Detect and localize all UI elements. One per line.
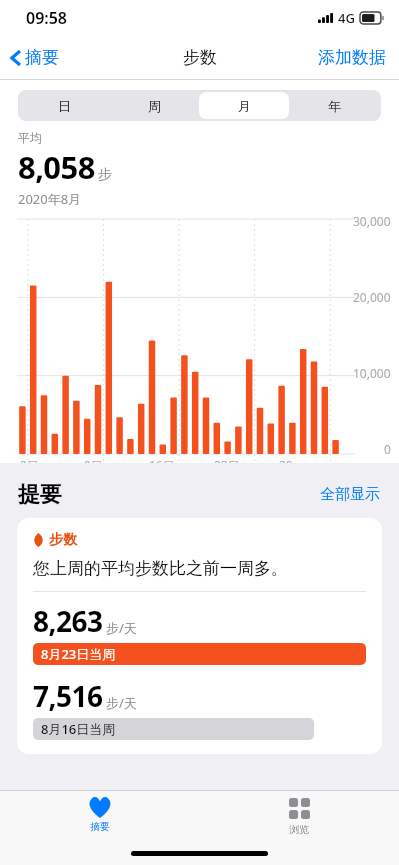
staticText: 4G: [338, 9, 355, 27]
button[interactable]: 添加数据: [305, 38, 399, 77]
staticText: 23日: [214, 457, 240, 473]
staticText: 2日: [20, 457, 39, 473]
staticText: 步/天: [106, 694, 137, 712]
staticText: 提要: [18, 481, 62, 509]
button[interactable]: 摘要: [0, 791, 199, 841]
staticText: 0: [384, 441, 391, 457]
staticText: 步/天: [106, 619, 137, 637]
staticText: 8,263: [33, 602, 103, 640]
staticText: 8月16日当周: [41, 720, 116, 738]
staticText: 平均: [18, 130, 42, 145]
staticText: 8,058: [18, 146, 95, 188]
staticText: 周: [148, 98, 161, 114]
staticText: 日: [58, 98, 71, 114]
staticText: 16日: [149, 457, 175, 473]
staticText: 30,000: [353, 213, 391, 229]
button[interactable]: 全部显示: [315, 480, 385, 509]
staticText: 7,516: [33, 677, 103, 715]
staticText: 20,000: [353, 289, 391, 305]
staticText: 09:58: [26, 7, 68, 29]
button[interactable]: 摘要: [0, 40, 69, 75]
staticText: 8月23日当周: [41, 645, 116, 663]
staticText: 摘要: [25, 47, 59, 68]
staticText: 您上周的平均步数比之前一周多。: [33, 558, 288, 579]
button[interactable]: 月: [199, 92, 289, 119]
button[interactable]: 年: [289, 92, 379, 119]
staticText: 2020年8月: [18, 190, 82, 208]
staticText: 步: [98, 166, 112, 184]
staticText: 月: [238, 98, 251, 114]
staticText: 摘要: [90, 820, 110, 833]
staticText: 浏览: [289, 823, 309, 836]
button[interactable]: 日: [20, 92, 109, 119]
staticText: 步数: [183, 47, 217, 68]
button[interactable]: 浏览: [199, 791, 399, 841]
staticText: 30: [279, 457, 293, 473]
staticText: 10,000: [353, 365, 391, 381]
staticText: 9日: [84, 457, 103, 473]
button[interactable]: 周: [109, 92, 199, 119]
staticText: 步数: [49, 531, 77, 549]
button[interactable]: 步数: [17, 518, 382, 754]
staticText: 年: [328, 98, 341, 114]
